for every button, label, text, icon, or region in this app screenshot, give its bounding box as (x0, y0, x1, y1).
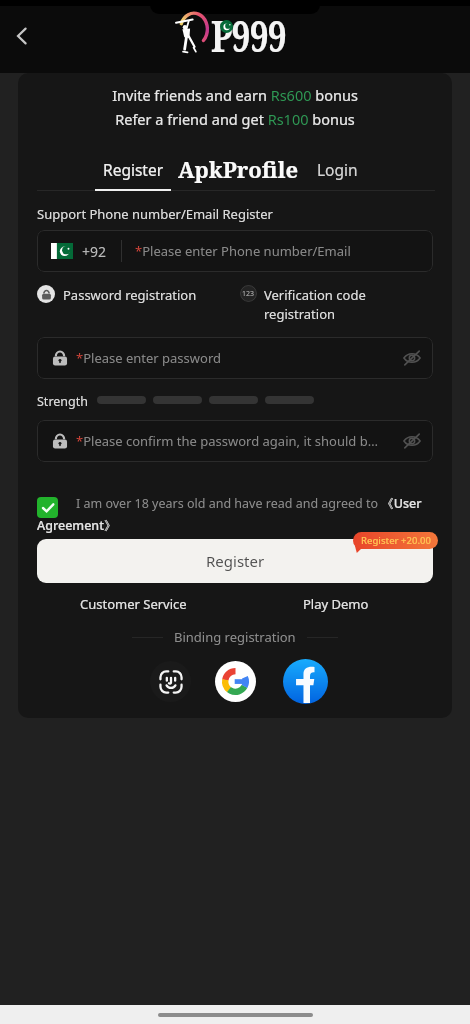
button[interactable]: Register (37, 539, 433, 583)
button[interactable]: Customer Service (74, 589, 193, 619)
staticText: Verification code registration (264, 286, 366, 323)
button[interactable]: I am over 18 years old and have read and… (37, 495, 433, 541)
staticText: Register +20.00 (361, 534, 431, 547)
staticText: 123 (242, 289, 255, 299)
staticText: *Please confirm the password again, it s… (76, 432, 378, 450)
button[interactable]: Sign in with Google (215, 661, 256, 702)
staticText: Support Phone number/Email Register (37, 205, 273, 223)
staticText: ApkProfile (178, 154, 298, 184)
button[interactable]: +92 (37, 230, 433, 272)
staticText: Invite friends and earn Rs600 bonus (112, 85, 358, 105)
button[interactable]: Show password (394, 340, 430, 376)
button[interactable]: P999 home (176, 6, 292, 62)
staticText: Refer a friend and get Rs100 bonus (115, 109, 355, 129)
staticText: I am over 18 years old and have read and… (37, 495, 433, 534)
staticText: *Please enter password (76, 349, 222, 367)
button[interactable]: Play Demo (297, 589, 375, 619)
button[interactable]: Show password (394, 423, 430, 459)
button[interactable]: Face ID login (150, 661, 191, 702)
staticText: Play Demo (303, 595, 369, 613)
staticText: Password registration (63, 286, 197, 304)
button[interactable]: Back (0, 14, 44, 58)
staticText: P999 (211, 5, 286, 61)
button[interactable]: Login (303, 154, 371, 188)
staticText: *Please enter Phone number/Email (135, 242, 351, 260)
button[interactable]: Sign in with Facebook (283, 659, 328, 704)
button[interactable]: *Please enter password (37, 337, 433, 379)
staticText: Login (317, 159, 358, 180)
staticText: Customer Service (80, 595, 187, 613)
staticText: Register (103, 159, 164, 180)
staticText: +92 (82, 242, 107, 261)
button[interactable]: Register (86, 154, 180, 190)
button[interactable]: 123 (240, 284, 366, 324)
button[interactable]: Password registration (37, 284, 197, 320)
staticText: Strength (37, 393, 88, 409)
button[interactable]: *Please confirm the password again, it s… (37, 420, 433, 462)
staticText: Register (206, 551, 265, 571)
staticText: Binding registration (174, 628, 296, 646)
